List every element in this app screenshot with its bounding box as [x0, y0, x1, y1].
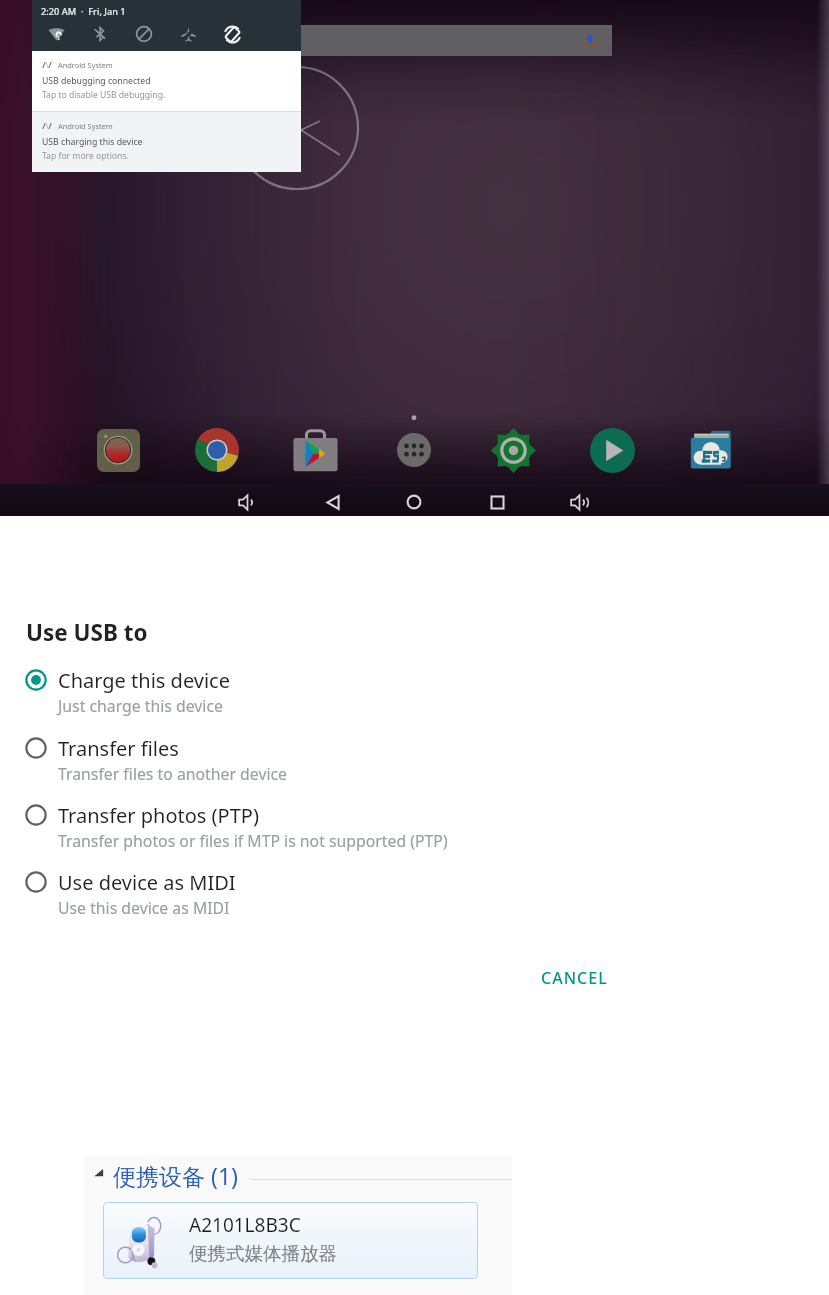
button[interactable]: Auto rotate: [218, 20, 246, 48]
button[interactable]: Airplane mode: [174, 20, 202, 48]
button[interactable]: Use device as MIDI: [22, 868, 829, 919]
button[interactable]: Back: [317, 486, 349, 518]
staticText: 2:20 AM · Fri, Jan 1: [41, 5, 126, 18]
staticText: Android System: [58, 121, 113, 131]
staticText: Tap for more options.: [42, 150, 129, 162]
staticText: Charge this device: [58, 667, 230, 694]
staticText: Android System: [58, 60, 113, 70]
staticText: CANCEL: [541, 967, 608, 989]
button[interactable]: Bluetooth: [86, 20, 114, 48]
button[interactable]: Transfer files: [22, 734, 829, 785]
staticText: Use device as MIDI: [58, 869, 236, 896]
staticText: Use this device as MIDI: [58, 897, 230, 919]
staticText: Transfer files: [58, 735, 179, 762]
staticText: Use USB to: [26, 617, 148, 648]
staticText: 便携式媒体播放器: [189, 1242, 337, 1265]
button[interactable]: App 6: [685, 424, 737, 476]
staticText: Tap to disable USB debugging.: [42, 89, 166, 101]
button[interactable]: Android System: [32, 112, 301, 172]
staticText: Transfer photos or files if MTP is not s…: [58, 830, 448, 852]
button[interactable]: Home: [398, 486, 430, 518]
button[interactable]: Transfer photos (PTP): [22, 801, 829, 852]
button[interactable]: Wi-Fi: [42, 20, 70, 48]
button[interactable]: App 1: [191, 424, 243, 476]
button[interactable]: App 3: [388, 424, 440, 476]
staticText: Transfer files to another device: [58, 763, 287, 785]
button[interactable]: App 4: [487, 424, 539, 476]
staticText: USB debugging connected: [42, 75, 151, 87]
button[interactable]: Android System: [32, 51, 301, 111]
button[interactable]: App 0: [92, 424, 144, 476]
button[interactable]: App 5: [586, 424, 638, 476]
button[interactable]: Portable devices group: [93, 1160, 238, 1191]
staticText: Just charge this device: [58, 695, 223, 717]
staticText: USB charging this device: [42, 136, 143, 148]
button[interactable]: Volume up: [563, 486, 595, 518]
button[interactable]: CANCEL: [531, 960, 618, 996]
staticText: Transfer photos (PTP): [58, 802, 259, 829]
button[interactable]: Volume down: [231, 486, 263, 518]
button[interactable]: Charge this device: [22, 666, 829, 717]
staticText: 便携设备 (1): [113, 1160, 238, 1191]
button[interactable]: App 2: [289, 424, 341, 476]
staticText: A2101L8B3C: [189, 1212, 301, 1238]
button[interactable]: Google search: [301, 25, 612, 56]
button[interactable]: Recents: [481, 486, 513, 518]
button[interactable]: A2101L8B3C: [103, 1202, 478, 1279]
button[interactable]: Do not disturb: [130, 20, 158, 48]
